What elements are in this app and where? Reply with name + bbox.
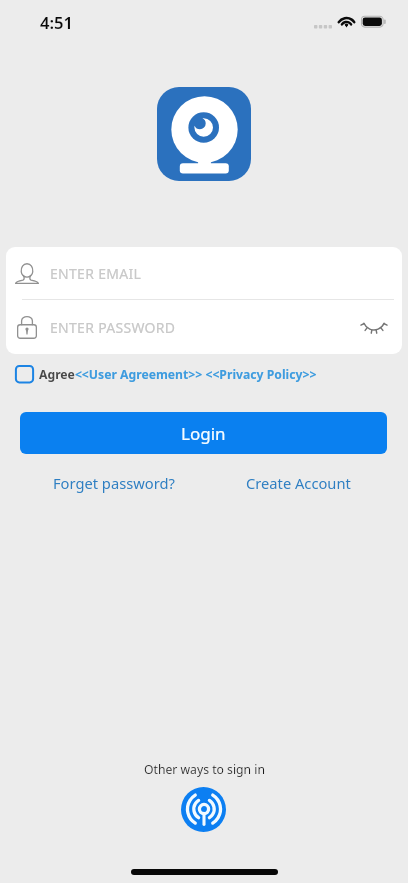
staticText: Forget password? — [53, 473, 175, 493]
staticText: Other ways to sign in — [144, 761, 265, 778]
button[interactable]: Sign in with device — [181, 787, 226, 832]
staticText: Agree<<User Agreement>> <<Privacy Policy… — [39, 366, 317, 383]
button[interactable]: ENTER EMAIL — [6, 247, 402, 299]
staticText: Create Account — [246, 473, 351, 493]
staticText: ENTER EMAIL — [50, 264, 142, 283]
button[interactable]: Forget password? — [44, 471, 184, 495]
staticText: ENTER PASSWORD — [50, 318, 176, 337]
button[interactable]: Agree<<User Agreement>> <<Privacy Policy… — [14, 362, 317, 386]
button[interactable]: Show password — [353, 305, 395, 349]
button[interactable]: Create Account — [238, 471, 358, 495]
button[interactable]: Login — [20, 412, 387, 454]
staticText: Login — [181, 422, 226, 445]
staticText: 4:51 — [40, 11, 74, 34]
button[interactable]: ENTER PASSWORD — [6, 300, 402, 354]
